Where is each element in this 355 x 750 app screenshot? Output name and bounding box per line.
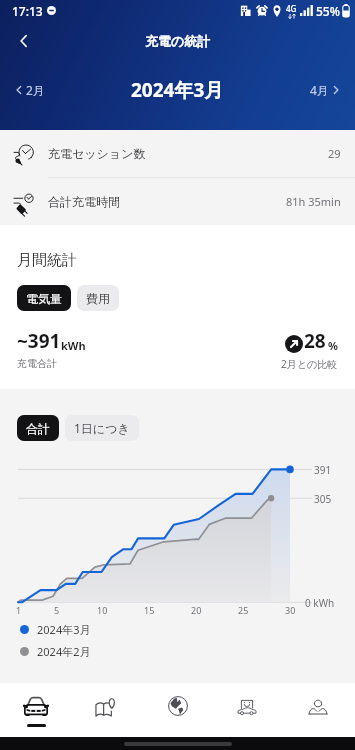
button[interactable]: 費用 <box>77 285 119 311</box>
staticText: 4G <box>286 3 297 14</box>
staticText: 55% <box>316 3 340 19</box>
staticText: 合計充電時間 <box>48 194 120 209</box>
button[interactable]: Map <box>71 683 142 737</box>
staticText: 費用 <box>86 291 110 306</box>
staticText: 15 <box>144 604 155 616</box>
staticText: 2024年3月 <box>131 77 224 103</box>
button[interactable]: Profile <box>284 683 355 737</box>
button[interactable]: 合計充電時間 <box>0 178 355 225</box>
staticText: 30 <box>285 604 296 616</box>
staticText: 10 <box>97 604 108 616</box>
staticText: 0 kWh <box>305 596 335 610</box>
staticText: 充電セッション数 <box>48 146 146 161</box>
staticText: 29 <box>328 146 341 161</box>
staticText: 1日につき <box>74 420 130 436</box>
button[interactable]: Discover <box>142 683 213 737</box>
button[interactable]: Vehicle <box>0 683 71 737</box>
staticText: 20 <box>191 604 202 616</box>
staticText: 2月との比較 <box>281 357 338 371</box>
staticText: 2024年2月 <box>37 644 91 659</box>
staticText: 合計 <box>26 421 50 436</box>
staticText: 充電の統計 <box>145 33 211 49</box>
button[interactable]: Back <box>8 25 40 57</box>
staticText: 2024年3月 <box>37 622 91 637</box>
staticText: 4月 <box>310 82 329 98</box>
button[interactable]: 4月 <box>310 82 343 98</box>
staticText: kWh <box>61 338 86 353</box>
button[interactable]: Shop <box>213 683 284 737</box>
staticText: 充電合計 <box>17 357 57 370</box>
staticText: ~391 <box>17 328 61 354</box>
button[interactable]: 電気量 <box>17 285 71 311</box>
staticText: % <box>328 338 338 353</box>
staticText: 電気量 <box>26 291 62 306</box>
button[interactable]: 充電セッション数 <box>0 130 355 177</box>
staticText: 月間統計 <box>17 251 77 270</box>
button[interactable]: 合計 <box>17 415 59 441</box>
staticText: 81h 35min <box>286 194 341 209</box>
button[interactable]: 1日につき <box>65 415 139 441</box>
staticText: 28 <box>304 328 326 354</box>
staticText: 1 <box>16 604 22 616</box>
staticText: 2月 <box>26 82 45 98</box>
staticText: 5 <box>54 604 60 616</box>
staticText: 391 <box>314 463 332 477</box>
staticText: 305 <box>314 492 332 506</box>
button[interactable]: 2月 <box>12 82 45 98</box>
staticText: 25 <box>238 604 249 616</box>
staticText: 17:13 <box>12 3 43 19</box>
